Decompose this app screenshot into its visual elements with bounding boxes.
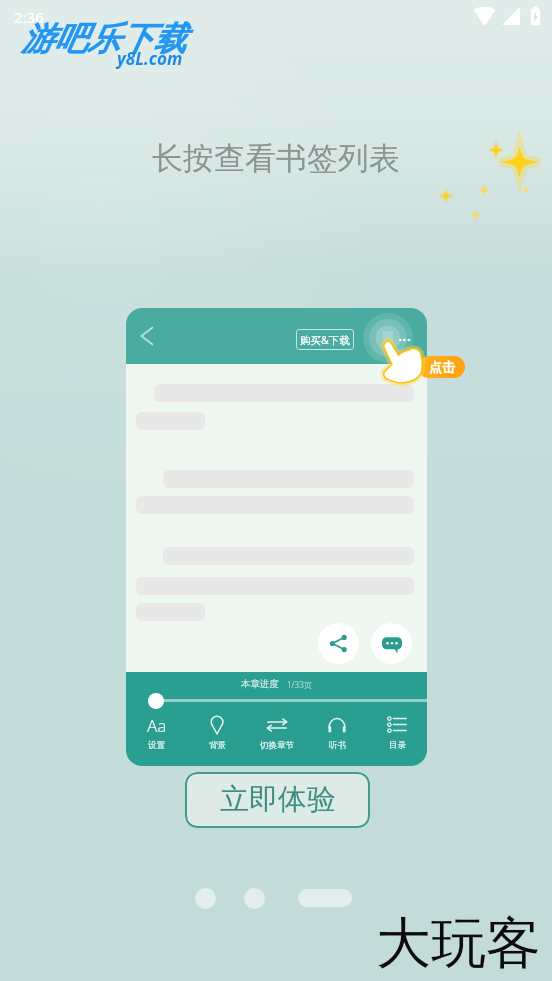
- staticText: 设置: [148, 740, 165, 751]
- button[interactable]: 切换章节: [247, 714, 307, 751]
- staticText: y8L.com: [117, 47, 183, 70]
- staticText: 本章进度: [241, 678, 279, 690]
- staticText: 目录: [389, 740, 406, 751]
- staticText: 大玩客: [376, 909, 541, 978]
- button[interactable]: 背景: [187, 714, 247, 751]
- button[interactable]: Page 1: [195, 888, 216, 909]
- staticText: 点击: [429, 359, 455, 375]
- staticText: 背景: [209, 740, 226, 751]
- button[interactable]: More options: [397, 331, 415, 349]
- staticText: 长按查看书签列表: [152, 139, 400, 178]
- button[interactable]: Page 3, current: [298, 889, 352, 907]
- staticText: 听书: [329, 740, 346, 751]
- button[interactable]: Aa: [126, 714, 187, 751]
- button[interactable]: 听书: [307, 714, 367, 751]
- staticText: 立即体验: [220, 781, 336, 818]
- button[interactable]: Back: [135, 322, 159, 346]
- button[interactable]: 立即体验: [185, 772, 370, 828]
- staticText: 1/33页: [287, 679, 312, 690]
- staticText: Aa: [147, 714, 167, 736]
- staticText: 切换章节: [260, 740, 294, 751]
- staticText: 2:36: [14, 7, 44, 27]
- button[interactable]: 目录: [367, 714, 427, 751]
- button[interactable]: Share: [318, 623, 359, 664]
- staticText: 游吧乐下载: [21, 18, 186, 60]
- button[interactable]: Comments: [371, 623, 412, 664]
- button[interactable]: 购买&下载: [296, 329, 354, 350]
- button[interactable]: Page 2: [244, 888, 265, 909]
- staticText: 购买&下载: [300, 333, 350, 347]
